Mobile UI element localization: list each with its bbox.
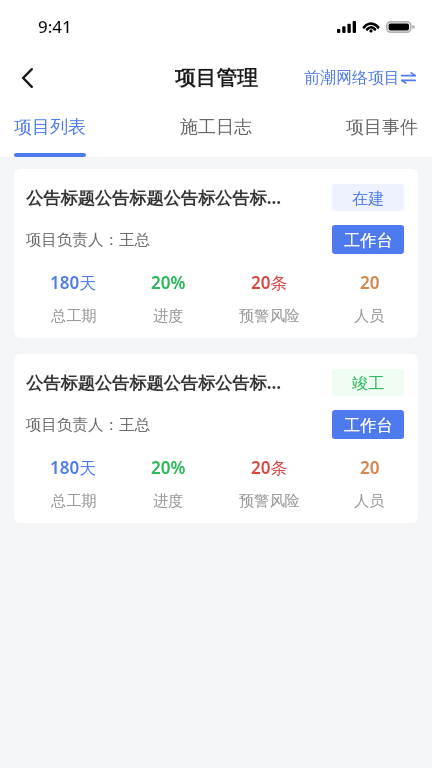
- staticText: 工作台: [344, 230, 393, 250]
- staticText: 9:41: [38, 15, 72, 38]
- staticText: 在建: [352, 188, 385, 208]
- staticText: 20: [360, 271, 380, 294]
- staticText: 公告标题公告标题公告标公告标...: [26, 186, 301, 209]
- button[interactable]: 工作台: [332, 410, 404, 439]
- staticText: 进度: [153, 306, 184, 325]
- staticText: 竣工: [352, 373, 385, 393]
- staticText: 20条: [251, 456, 288, 479]
- staticText: 预警风险: [239, 491, 300, 510]
- staticText: 工作台: [344, 415, 393, 435]
- button[interactable]: 公告标题公告标题公告标公告标...: [14, 169, 418, 338]
- button[interactable]: 公告标题公告标题公告标公告标...: [14, 354, 418, 523]
- staticText: 20条: [251, 271, 288, 294]
- staticText: 预警风险: [239, 306, 300, 325]
- staticText: 20%: [151, 271, 186, 294]
- staticText: 项目管理: [175, 65, 258, 91]
- staticText: 20: [360, 456, 380, 479]
- button[interactable]: 前潮网络项目: [304, 68, 416, 88]
- staticText: 180天: [50, 456, 97, 479]
- button[interactable]: 工作台: [332, 225, 404, 254]
- staticText: 项目列表: [14, 116, 86, 139]
- staticText: 项目事件: [346, 116, 418, 139]
- button[interactable]: 项目列表: [14, 102, 86, 157]
- staticText: 180天: [50, 271, 97, 294]
- staticText: 总工期: [51, 491, 97, 510]
- staticText: 公告标题公告标题公告标公告标...: [26, 371, 301, 394]
- staticText: 进度: [153, 491, 184, 510]
- staticText: 前潮网络项目: [304, 68, 400, 88]
- staticText: 人员: [354, 491, 385, 510]
- button[interactable]: 施工日志: [180, 102, 252, 157]
- button[interactable]: Back: [5, 56, 49, 100]
- button[interactable]: 项目事件: [346, 102, 418, 157]
- staticText: 施工日志: [180, 116, 252, 139]
- staticText: 项目负责人：王总: [26, 415, 332, 435]
- staticText: 人员: [354, 306, 385, 325]
- staticText: 20%: [151, 456, 186, 479]
- staticText: 总工期: [51, 306, 97, 325]
- staticText: 项目负责人：王总: [26, 230, 332, 250]
